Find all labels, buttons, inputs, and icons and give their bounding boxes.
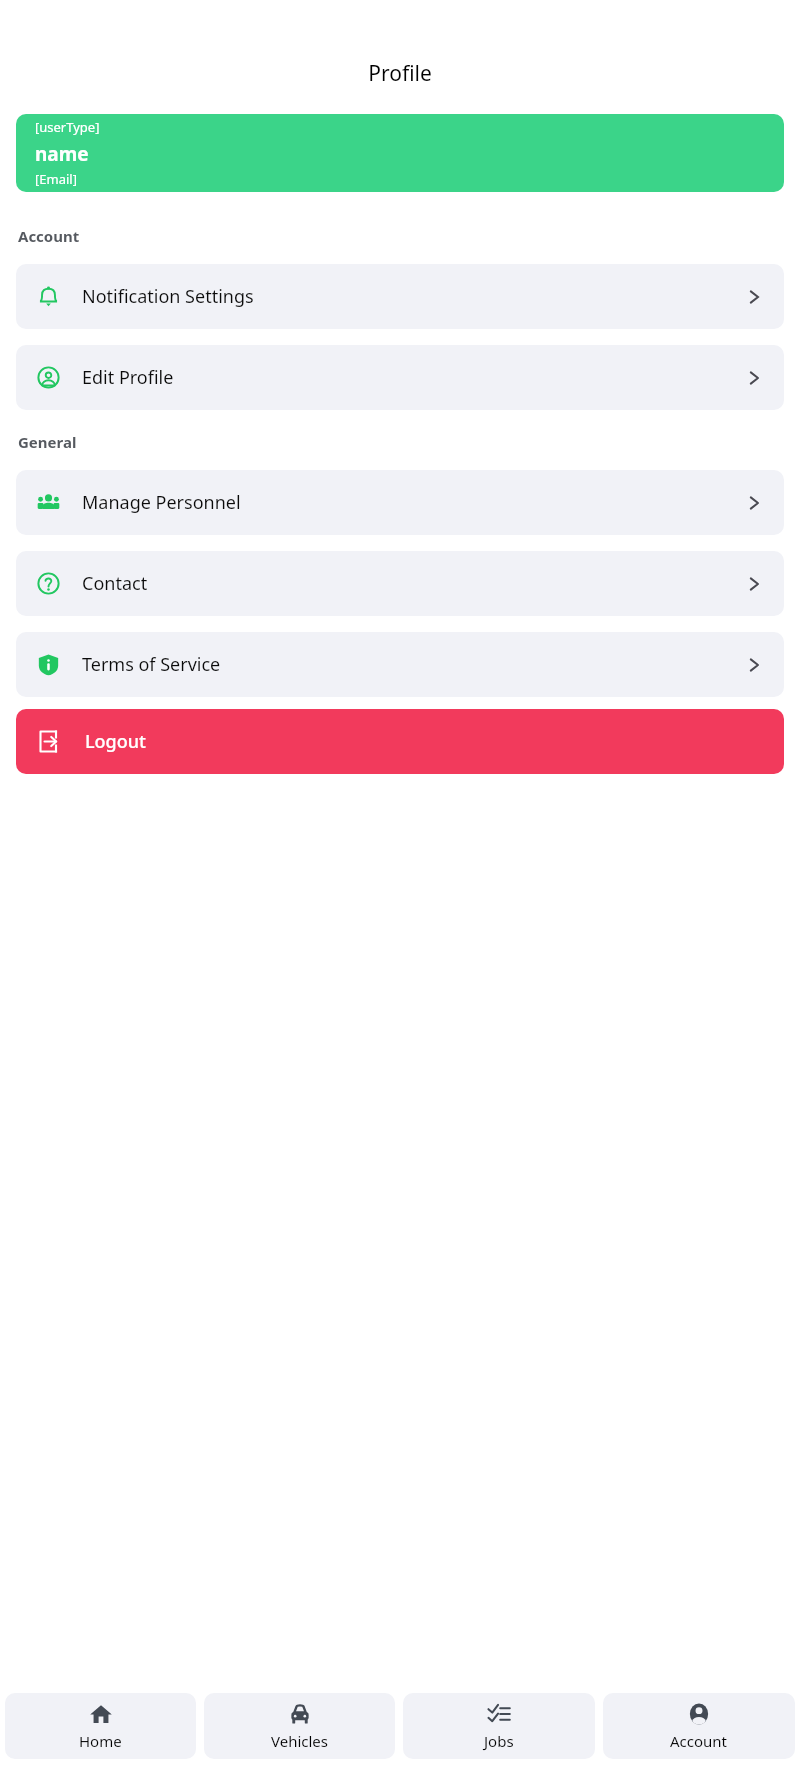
staticText: Edit Profile (82, 365, 174, 390)
button[interactable]: Account (603, 1693, 795, 1759)
button[interactable]: Edit Profile (16, 345, 784, 410)
staticText: Manage Personnel (82, 490, 241, 515)
button[interactable]: Jobs (403, 1693, 595, 1759)
staticText: Terms of Service (82, 652, 221, 677)
staticText: [Email] (35, 170, 77, 188)
staticText: Notification Settings (82, 284, 254, 309)
button[interactable]: Home (5, 1693, 196, 1759)
staticText: Jobs (484, 1731, 514, 1751)
staticText: [userType] (35, 118, 100, 136)
staticText: Account (670, 1731, 728, 1751)
staticText: Account (18, 226, 80, 246)
staticText: Home (79, 1731, 122, 1751)
staticText: Profile (368, 59, 432, 88)
button[interactable]: Contact (16, 551, 784, 616)
button[interactable]: [userType] (16, 114, 784, 192)
button[interactable]: Terms of Service (16, 632, 784, 697)
staticText: Logout (85, 729, 146, 754)
staticText: Vehicles (271, 1731, 329, 1751)
staticText: Contact (82, 571, 148, 596)
button[interactable]: Vehicles (204, 1693, 395, 1759)
button[interactable]: Manage Personnel (16, 470, 784, 535)
staticText: General (18, 432, 77, 452)
button[interactable]: Logout (16, 709, 784, 774)
staticText: name (35, 141, 89, 167)
button[interactable]: Notification Settings (16, 264, 784, 329)
